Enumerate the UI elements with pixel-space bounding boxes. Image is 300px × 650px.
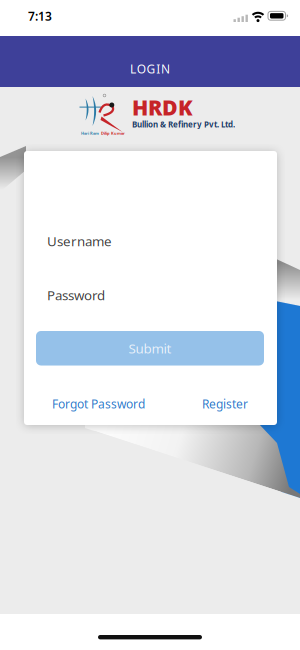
staticText: LOGIN bbox=[130, 61, 170, 77]
staticText: Hari Ram bbox=[81, 130, 99, 136]
staticText: Username bbox=[47, 232, 112, 250]
staticText: Password bbox=[47, 286, 105, 304]
staticText: Register bbox=[202, 396, 248, 412]
button[interactable]: Username bbox=[47, 226, 276, 256]
staticText: HRDK bbox=[132, 93, 193, 121]
button[interactable]: Register bbox=[202, 396, 248, 412]
staticText: Submit bbox=[128, 339, 171, 357]
staticText: Forgot Password bbox=[52, 396, 145, 412]
staticText: Bullion & Refinery Pvt. Ltd. bbox=[132, 119, 235, 130]
button[interactable]: Password bbox=[47, 280, 276, 310]
staticText: 7:13 bbox=[28, 8, 52, 24]
staticText: Dilip Kumar bbox=[101, 130, 125, 136]
button[interactable]: Submit bbox=[36, 331, 264, 365]
button[interactable]: Forgot Password bbox=[52, 396, 145, 412]
